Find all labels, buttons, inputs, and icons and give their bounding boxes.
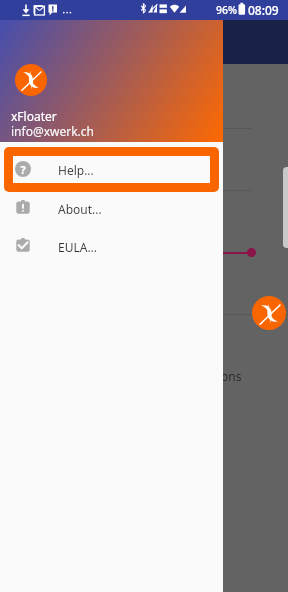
- staticText: 08:09: [248, 2, 279, 18]
- staticText: ons: [221, 368, 242, 384]
- staticText: ?: [20, 162, 26, 177]
- staticText: xFloater: [11, 108, 57, 124]
- staticText: Help...: [58, 162, 94, 178]
- button[interactable]: EULA...: [0, 228, 223, 266]
- button[interactable]: About...: [0, 190, 223, 228]
- staticText: 96%: [216, 3, 237, 17]
- staticText: EULA...: [58, 239, 98, 255]
- button[interactable]: Floating action button: [252, 296, 286, 330]
- button[interactable]: ?: [4, 147, 219, 192]
- staticText: info@xwerk.ch: [11, 123, 94, 139]
- staticText: About...: [58, 201, 102, 217]
